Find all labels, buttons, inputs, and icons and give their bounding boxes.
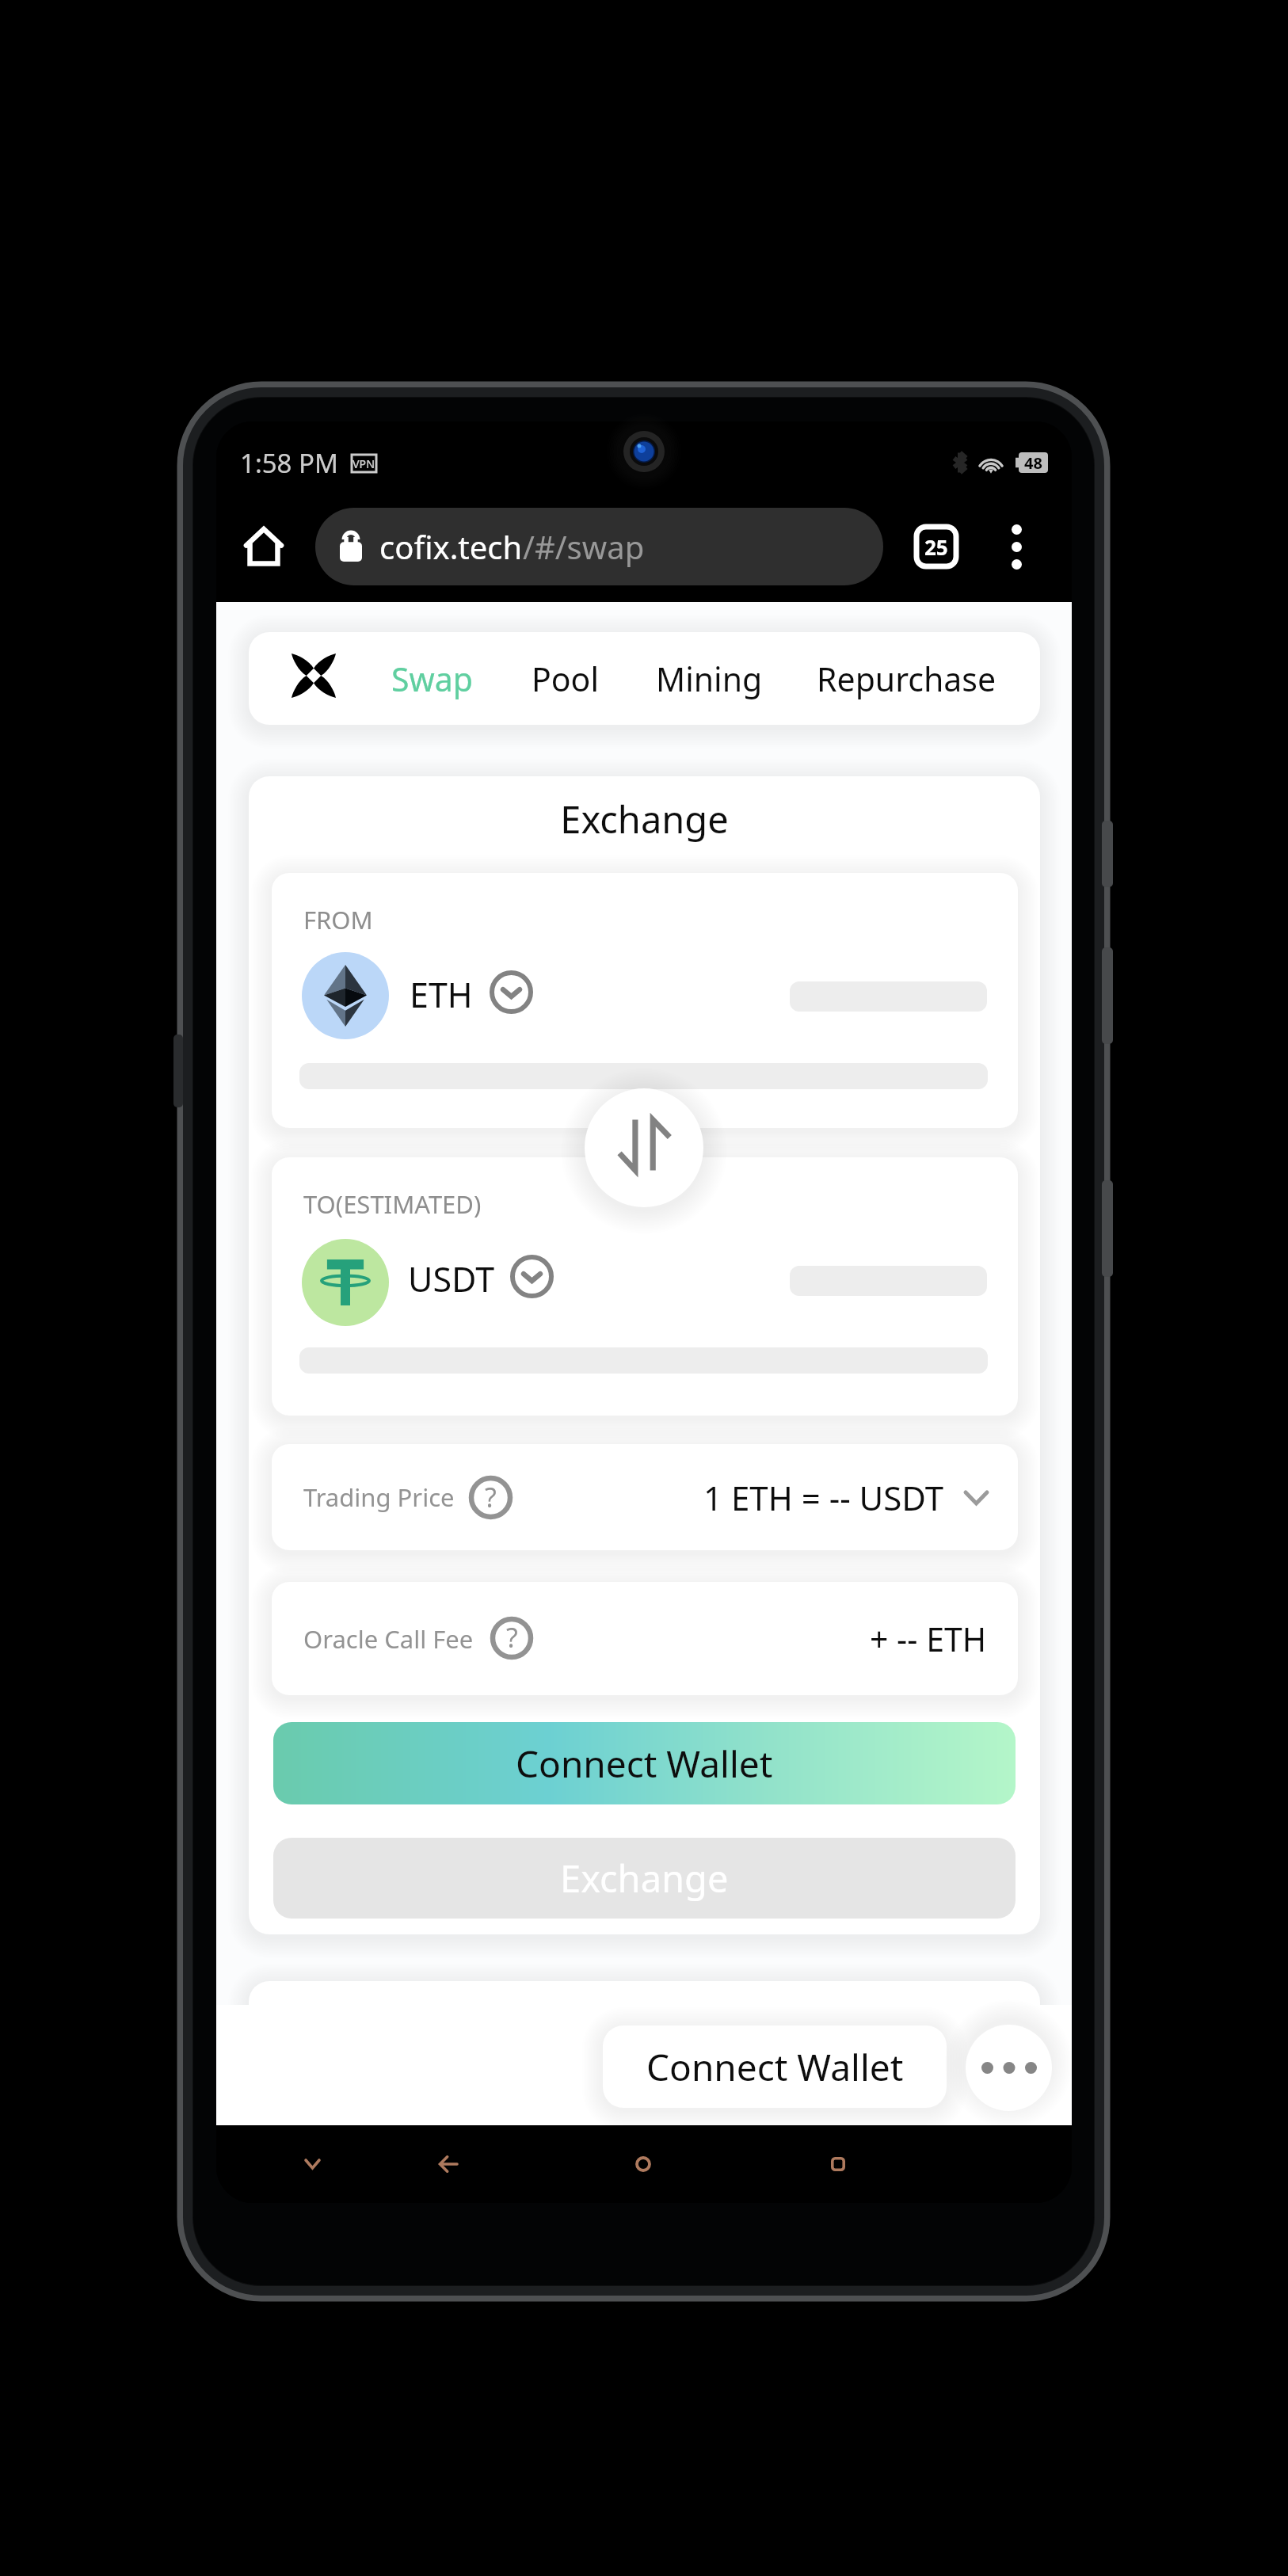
button[interactable]: More options — [966, 2025, 1052, 2111]
button[interactable]: Choose token — [490, 970, 533, 1014]
button[interactable]: Back — [417, 2132, 480, 2196]
button[interactable]: Hide keyboard — [280, 2132, 344, 2196]
button[interactable]: Repurchase — [817, 632, 996, 725]
button[interactable]: Home page — [227, 509, 301, 584]
staticText: FROM — [303, 903, 373, 936]
button[interactable]: Connect Wallet — [603, 2025, 947, 2108]
staticText: TO(ESTIMATED) — [303, 1187, 482, 1221]
button[interactable]: Swap — [391, 632, 473, 725]
button[interactable]: Pool — [532, 632, 599, 725]
button[interactable]: Connect Wallet — [273, 1722, 1016, 1804]
staticText: Swap — [391, 657, 473, 701]
staticText: Exchange — [560, 1853, 729, 1903]
staticText: cofix.tech — [379, 525, 523, 568]
staticText: Pool — [532, 657, 599, 701]
button[interactable]: Switch or close tabs — [899, 509, 974, 584]
button[interactable]: cofix.tech — [315, 508, 883, 585]
staticText: ETH — [410, 971, 473, 1018]
button[interactable]: Choose token — [510, 1255, 554, 1298]
staticText: + -- ETH — [870, 1617, 987, 1661]
staticText: 1:58 PM — [240, 445, 338, 481]
staticText: /#/swap — [523, 525, 645, 568]
button[interactable]: ETH — [302, 952, 389, 1039]
staticText: Connect Wallet — [516, 1739, 773, 1789]
staticText: 1 ETH = -- USDT — [703, 1475, 944, 1520]
button[interactable]: Switch tokens — [585, 1088, 703, 1207]
staticText: USDT — [408, 1256, 495, 1302]
staticText: Exchange — [249, 794, 1040, 844]
staticText: ? — [485, 1479, 497, 1515]
staticText: Connect Wallet — [646, 2042, 904, 2092]
staticText: Mining — [656, 657, 763, 701]
staticText: Trading Price — [303, 1480, 455, 1514]
staticText: 25 — [924, 533, 948, 561]
button[interactable]: Recent apps — [806, 2132, 870, 2196]
staticText: 48 — [1024, 452, 1042, 473]
staticText: Repurchase — [817, 657, 996, 701]
staticText: Oracle Call Fee — [303, 1622, 474, 1656]
button[interactable]: Exchange — [273, 1838, 1016, 1919]
staticText: VPN — [352, 456, 375, 471]
button[interactable]: Trading Price — [272, 1444, 1018, 1550]
button[interactable]: Oracle Call Fee — [272, 1582, 1018, 1695]
staticText: ? — [506, 1619, 518, 1656]
button[interactable]: Mining — [656, 632, 763, 725]
button[interactable]: USDT — [302, 1239, 389, 1326]
button[interactable]: Home — [612, 2132, 675, 2196]
button[interactable]: Customize and control Chrome — [979, 509, 1054, 584]
